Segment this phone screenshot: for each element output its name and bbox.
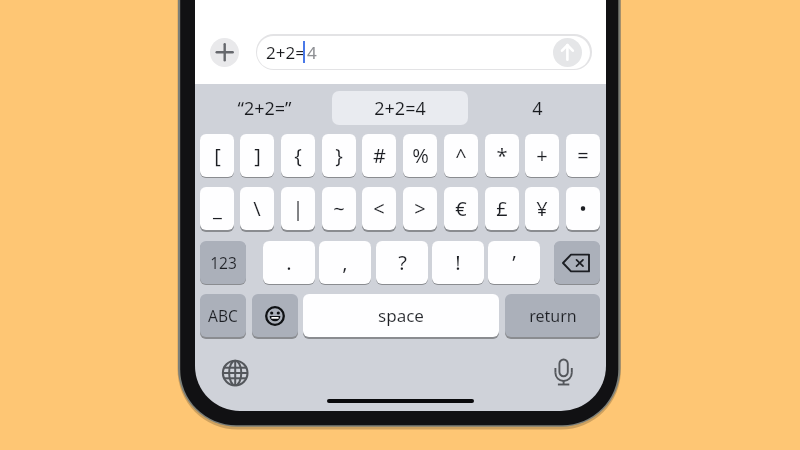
staticText: ABC: [208, 305, 238, 326]
button[interactable]: return: [505, 294, 600, 337]
staticText: ]: [254, 142, 261, 169]
button[interactable]: ¥: [525, 187, 559, 230]
button[interactable]: }: [322, 134, 356, 177]
staticText: ,: [342, 249, 348, 276]
button[interactable]: ,: [319, 241, 371, 284]
staticText: _: [213, 195, 222, 222]
staticText: 2+2=: [266, 41, 305, 64]
staticText: }: [335, 142, 343, 169]
button[interactable]: ?: [376, 241, 428, 284]
staticText: .: [286, 249, 292, 276]
button[interactable]: [: [200, 134, 234, 177]
button[interactable]: #: [362, 134, 396, 177]
staticText: #: [373, 142, 386, 169]
button[interactable]: {: [281, 134, 315, 177]
button[interactable]: %: [403, 134, 437, 177]
button[interactable]: |: [281, 187, 315, 230]
button[interactable]: •: [566, 187, 600, 230]
button[interactable]: space: [303, 294, 499, 337]
button[interactable]: =: [566, 134, 600, 177]
staticText: ?: [398, 249, 407, 276]
staticText: {: [294, 142, 302, 169]
button[interactable]: [215, 353, 255, 393]
button[interactable]: !: [432, 241, 484, 284]
staticText: 123: [210, 252, 237, 273]
button[interactable]: <: [362, 187, 396, 230]
button[interactable]: [252, 294, 298, 337]
button[interactable]: [543, 353, 583, 393]
staticText: %: [412, 142, 429, 169]
staticText: >: [414, 195, 426, 222]
button[interactable]: €: [444, 187, 478, 230]
button[interactable]: [554, 241, 600, 284]
staticText: =: [577, 142, 589, 169]
button[interactable]: 123: [200, 241, 246, 284]
button[interactable]: >: [403, 187, 437, 230]
button[interactable]: [553, 38, 582, 67]
staticText: return: [529, 305, 577, 327]
staticText: |: [292, 195, 304, 222]
button[interactable]: [210, 38, 239, 67]
staticText: space: [378, 304, 424, 327]
button[interactable]: _: [200, 187, 234, 230]
staticText: ’: [512, 249, 516, 276]
button[interactable]: ’: [488, 241, 540, 284]
staticText: €: [455, 195, 467, 222]
button[interactable]: .: [263, 241, 315, 284]
button[interactable]: [256, 34, 592, 70]
button[interactable]: ^: [444, 134, 478, 177]
button[interactable]: ~: [322, 187, 356, 230]
button[interactable]: ABC: [200, 294, 246, 337]
button[interactable]: +: [525, 134, 559, 177]
staticText: •: [579, 195, 587, 222]
staticText: ~: [333, 195, 345, 222]
button[interactable]: [332, 91, 468, 125]
staticText: [: [214, 142, 221, 169]
button[interactable]: \: [240, 187, 274, 230]
staticText: *: [496, 142, 508, 169]
staticText: ^: [455, 142, 467, 169]
button[interactable]: *: [485, 134, 519, 177]
staticText: £: [496, 195, 508, 222]
staticText: +: [536, 142, 548, 169]
staticText: !: [455, 249, 461, 276]
staticText: ¥: [536, 195, 548, 222]
staticText: “2+2=”: [237, 96, 292, 121]
staticText: 2+2=4: [374, 96, 426, 121]
staticText: <: [373, 195, 385, 222]
button[interactable]: ]: [240, 134, 274, 177]
button[interactable]: £: [485, 187, 519, 230]
staticText: \: [253, 195, 261, 222]
staticText: 4: [532, 96, 543, 121]
staticText: 4: [307, 41, 317, 64]
